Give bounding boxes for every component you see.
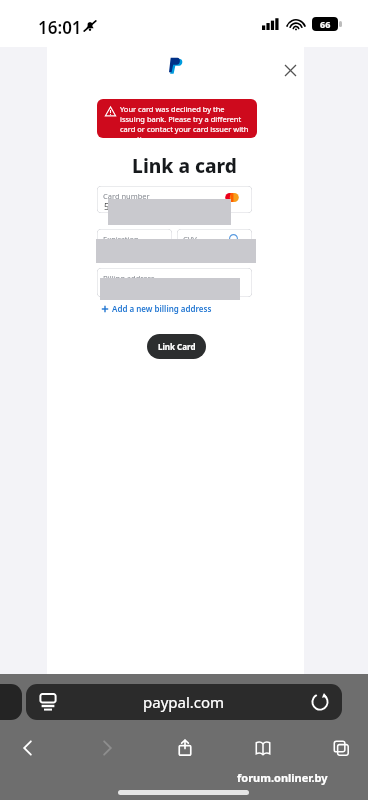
button[interactable]: Forward — [95, 736, 119, 760]
button[interactable]: Close — [282, 62, 299, 79]
button[interactable]: Reader view — [38, 692, 58, 712]
staticText: Add a new billing address — [112, 303, 212, 314]
staticText: forum.onliner.by — [237, 770, 328, 785]
button[interactable]: CVV — [177, 229, 252, 255]
button[interactable]: Reload — [310, 692, 330, 712]
staticText: paypal.com — [143, 692, 225, 712]
button[interactable]: Card number — [97, 186, 252, 213]
button[interactable]: paypal.com — [26, 684, 342, 720]
staticText: Link a card — [132, 153, 237, 179]
button[interactable]: Back — [16, 736, 40, 760]
staticText: CVV — [183, 234, 197, 244]
staticText: Card number — [103, 191, 150, 201]
button[interactable]: Tabs — [329, 736, 353, 760]
button[interactable]: Billing address — [97, 268, 252, 297]
staticText: 66 — [320, 18, 331, 30]
staticText: 16:01 — [38, 16, 82, 39]
button[interactable]: Link Card — [147, 334, 206, 359]
button[interactable]: Expiration — [97, 229, 172, 255]
staticText: 5 — [104, 200, 110, 212]
staticText: Billing address — [103, 273, 155, 283]
staticText: Link Card — [158, 341, 196, 352]
button[interactable]: Add a new billing address — [101, 303, 212, 314]
staticText: Your card was declined by the issuing ba… — [120, 104, 250, 138]
button[interactable]: Bookmarks — [251, 736, 275, 760]
staticText: Expiration — [103, 234, 139, 244]
button[interactable]: Share — [173, 736, 197, 760]
